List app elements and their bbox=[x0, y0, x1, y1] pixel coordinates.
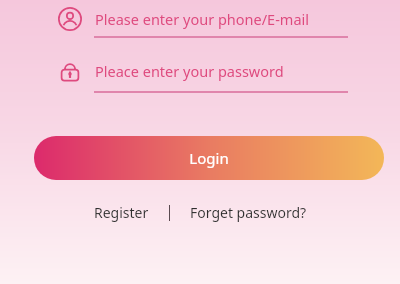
staticText: Forget password? bbox=[190, 203, 307, 222]
button[interactable]: Forget password? bbox=[184, 200, 313, 225]
button[interactable]: Password bbox=[58, 54, 354, 88]
staticText: Login bbox=[189, 148, 229, 168]
button[interactable]: Login bbox=[34, 136, 384, 180]
other: Account bbox=[58, 7, 82, 31]
other: Password bbox=[58, 59, 82, 83]
staticText: Please enter your phone/E-mail bbox=[95, 9, 310, 29]
button[interactable]: Account bbox=[58, 2, 354, 36]
button[interactable]: Register bbox=[88, 200, 155, 225]
staticText: Pleace enter your password bbox=[95, 61, 284, 81]
staticText: Register bbox=[94, 203, 149, 222]
